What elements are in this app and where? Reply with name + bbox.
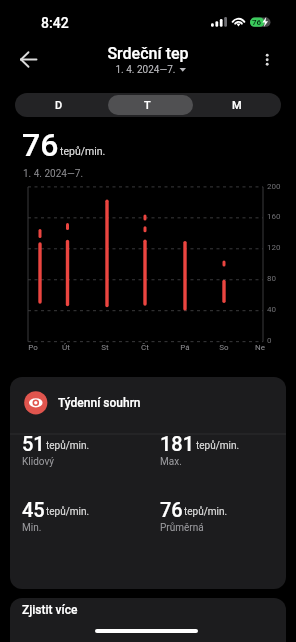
staticText: 120	[267, 243, 281, 252]
staticText: T	[144, 99, 151, 112]
staticText: 51	[22, 432, 45, 455]
staticText: 80	[267, 274, 276, 283]
staticText: tepů/min.	[46, 440, 90, 452]
staticText: tepů/min.	[196, 440, 240, 452]
staticText: So	[219, 343, 229, 352]
staticText: Týdenní souhrn	[58, 396, 141, 410]
button[interactable]	[108, 95, 193, 115]
staticText: 200	[267, 182, 281, 191]
staticText: D	[55, 99, 63, 112]
button[interactable]: M	[192, 93, 281, 117]
staticText: 1. 4. 2024—7.	[23, 168, 84, 180]
staticText: tepů/min.	[46, 506, 90, 518]
button[interactable]: Týdenní souhrn	[10, 377, 286, 589]
staticText: 45	[22, 498, 45, 521]
staticText: Pá	[180, 343, 190, 352]
staticText: 76	[160, 498, 183, 521]
staticText: Průměrná	[160, 522, 204, 534]
button[interactable]: T	[103, 93, 192, 117]
staticText: 40	[267, 305, 276, 314]
staticText: Min.	[22, 522, 42, 534]
staticText: Max.	[160, 456, 182, 468]
staticText: 76	[22, 126, 59, 164]
staticText: Ne	[255, 343, 265, 352]
staticText: Srdeční tep	[107, 44, 189, 63]
button[interactable]: D	[15, 93, 103, 117]
staticText: Po	[28, 343, 38, 352]
staticText: 181	[160, 432, 195, 455]
staticText: 76	[252, 18, 262, 27]
staticText: tepů/min.	[60, 145, 106, 157]
staticText: Zjistit více	[22, 603, 78, 617]
staticText: Čt	[141, 343, 149, 352]
staticText: 0	[267, 336, 272, 345]
staticText: M	[232, 99, 242, 112]
button[interactable]: Zjistit více	[10, 598, 286, 642]
staticText: St	[101, 343, 109, 352]
staticText: tepů/min.	[184, 506, 228, 518]
staticText: 160	[267, 212, 281, 221]
staticText: Út	[62, 343, 70, 352]
staticText: 8:42	[41, 15, 69, 31]
staticText: 1. 4. 2024—7.	[115, 64, 176, 76]
staticText: Klidový	[22, 456, 54, 468]
